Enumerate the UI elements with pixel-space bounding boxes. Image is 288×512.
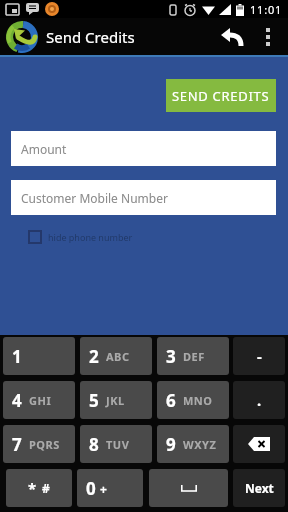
button[interactable]: 8 — [80, 425, 152, 463]
staticText: 1 — [12, 345, 22, 368]
staticText: Amount — [21, 141, 67, 157]
staticText: 3 — [166, 345, 176, 368]
staticText: hide phone number — [48, 231, 133, 243]
staticText: 5 — [89, 389, 99, 412]
button[interactable]: Amount — [11, 131, 276, 166]
staticText: 8 — [89, 433, 99, 456]
button[interactable]: 3 — [157, 337, 229, 375]
button[interactable]: - — [233, 337, 285, 375]
button[interactable] — [233, 425, 285, 463]
button[interactable]: . — [233, 381, 285, 419]
button[interactable]: 9 — [157, 425, 229, 463]
staticText: * — [28, 478, 37, 498]
staticText: SEND CREDITS — [172, 87, 270, 105]
staticText: DEF — [183, 349, 205, 364]
staticText: TUV — [106, 437, 130, 452]
staticText: # — [42, 480, 50, 496]
staticText: Next — [245, 480, 274, 496]
staticText: 6 — [166, 389, 176, 412]
button[interactable]: 4 — [3, 381, 75, 419]
staticText: Customer Mobile Number — [21, 190, 168, 206]
staticText: 4 — [12, 389, 22, 412]
button[interactable]: SEND CREDITS — [166, 79, 276, 112]
staticText: 9 — [166, 433, 176, 456]
staticText: 11:01 — [250, 2, 283, 17]
staticText: 0 — [86, 477, 96, 500]
staticText: 7 — [12, 433, 22, 456]
staticText: . — [257, 390, 262, 410]
staticText: - — [257, 346, 262, 366]
staticText: + — [100, 481, 107, 497]
staticText: JKL — [106, 393, 125, 408]
button[interactable]: 6 — [157, 381, 229, 419]
staticText: MNO — [183, 393, 213, 408]
button[interactable]: 0 — [77, 469, 143, 507]
button[interactable]: Customer Mobile Number — [11, 180, 276, 215]
staticText: GHI — [29, 393, 52, 408]
staticText: ABC — [106, 349, 130, 364]
button[interactable]: 7 — [3, 425, 75, 463]
staticText: 2 — [89, 345, 99, 368]
button[interactable]: 1 — [3, 337, 75, 375]
button[interactable]: Next — [233, 469, 285, 507]
staticText: PQRS — [29, 437, 60, 452]
button[interactable] — [212, 18, 252, 55]
button[interactable]: * — [6, 469, 72, 507]
staticText: WXYZ — [183, 437, 217, 452]
button[interactable]: hide phone number — [28, 230, 133, 244]
button[interactable]: 5 — [80, 381, 152, 419]
button[interactable]: 2 — [80, 337, 152, 375]
button[interactable] — [149, 469, 228, 507]
staticText: Send Credits — [46, 27, 135, 47]
button[interactable] — [252, 18, 284, 55]
